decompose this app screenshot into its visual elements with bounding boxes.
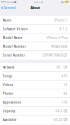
button[interactable]: Name: [0, 16, 70, 25]
staticText: Songs: [3, 74, 12, 78]
staticText: 64.0 GB: [55, 109, 67, 113]
staticText: Available: [3, 118, 17, 122]
staticText: 118: [61, 100, 67, 104]
staticText: C8PNR1PMG5QT: [42, 53, 67, 57]
staticText: Capacity: [3, 109, 15, 113]
button[interactable]: Model Name: [0, 33, 70, 42]
staticText: 9:41 AM: [34, 0, 43, 3]
button[interactable]: Capacity: [0, 107, 70, 116]
button[interactable]: Videos: [0, 80, 70, 89]
staticText: Videos: [3, 83, 13, 87]
button[interactable]: Songs: [0, 72, 70, 81]
staticText: About: [30, 6, 39, 10]
button[interactable]: Available: [0, 115, 70, 124]
button[interactable]: Software Version: [0, 25, 70, 33]
staticText: Network: [3, 65, 14, 69]
staticText: MGA92B/A: [51, 45, 67, 48]
staticText: Name: [3, 18, 12, 22]
staticText: Photos: [3, 92, 13, 96]
button[interactable]: General: [0, 4, 17, 12]
staticText: Serial Number: [3, 53, 25, 57]
button[interactable]: Serial Number: [0, 51, 70, 60]
staticText: 50.24 GB: [53, 118, 67, 122]
button[interactable]: Applications: [0, 98, 70, 107]
staticText: 82%: [61, 0, 65, 3]
button[interactable]: Photos: [0, 89, 70, 98]
staticText: 476: [61, 74, 67, 78]
staticText: Software Version: [3, 27, 28, 31]
button[interactable]: Model Number: [0, 42, 70, 51]
staticText: O2 - UK: [56, 65, 67, 69]
staticText: O2-UK: [6, 0, 13, 3]
staticText: General: [4, 6, 16, 10]
staticText: Model Number: [3, 45, 26, 48]
staticText: 14: [63, 83, 67, 87]
button[interactable]: Network: [0, 63, 70, 72]
staticText: Model Name: [3, 36, 23, 40]
staticText: 8.1.2: [59, 27, 67, 31]
staticText: iPhone 6 Plus: [46, 36, 67, 40]
staticText: iPhone: [54, 18, 65, 22]
staticText: Applications: [3, 100, 21, 104]
staticText: 84: [63, 92, 67, 96]
